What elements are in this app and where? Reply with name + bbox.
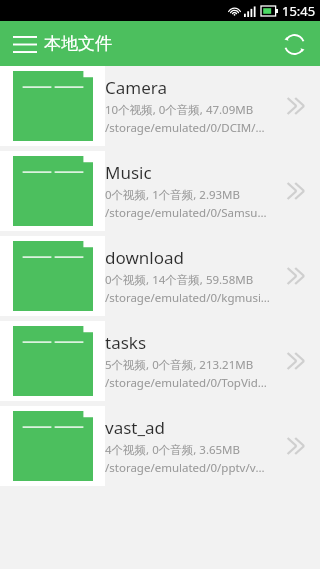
staticText: 10个视频, 0个音频, 47.09MB (105, 102, 254, 118)
staticText: 5个视频, 0个音频, 213.21MB (105, 357, 254, 373)
staticText: 本地文件 (44, 33, 112, 54)
staticText: /storage/emulated/0/Samsung/Music (105, 205, 270, 221)
staticText: /storage/emulated/0/pptv/vast_ad (105, 460, 270, 476)
staticText: /storage/emulated/0/DCIM/Camera (105, 120, 270, 136)
staticText: vast_ad (105, 416, 165, 439)
staticText: 0个视频, 1个音频, 2.93MB (105, 187, 241, 203)
button[interactable]: Refresh (276, 26, 312, 62)
button[interactable]: Camera (0, 66, 320, 146)
button[interactable]: Menu (10, 29, 40, 59)
button[interactable]: vast_ad (0, 406, 320, 486)
button[interactable]: download (0, 236, 320, 316)
button[interactable]: Music (0, 151, 320, 231)
staticText: tasks (105, 331, 147, 354)
staticText: /storage/emulated/0/kgmusic/down… (105, 290, 270, 306)
staticText: 15:45 (282, 2, 316, 20)
staticText: Music (105, 161, 152, 184)
button[interactable]: tasks (0, 321, 320, 401)
staticText: /storage/emulated/0/TopVideo/stor… (105, 375, 270, 391)
staticText: download (105, 246, 184, 269)
staticText: 0个视频, 14个音频, 59.58MB (105, 272, 254, 288)
staticText: Camera (105, 76, 167, 99)
staticText: 4个视频, 0个音频, 3.65MB (105, 442, 241, 458)
